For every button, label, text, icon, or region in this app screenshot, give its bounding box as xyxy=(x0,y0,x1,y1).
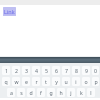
staticText: h xyxy=(59,89,63,96)
button[interactable]: w xyxy=(12,77,20,86)
button[interactable]: o xyxy=(82,77,90,86)
button[interactable]: 0 xyxy=(92,66,99,75)
staticText: Link xyxy=(4,8,15,15)
button[interactable]: Link xyxy=(4,8,15,15)
staticText: r xyxy=(35,78,38,85)
button[interactable]: i xyxy=(72,77,80,86)
button[interactable]: 6 xyxy=(52,66,60,75)
button[interactable]: s xyxy=(17,88,25,97)
button[interactable]: 1 xyxy=(2,66,10,75)
button[interactable]: j xyxy=(67,88,75,97)
button[interactable]: 4 xyxy=(32,66,40,75)
staticText: s xyxy=(20,89,23,96)
staticText: g xyxy=(49,89,53,96)
button[interactable]: r xyxy=(32,77,40,86)
staticText: d xyxy=(29,89,33,96)
button[interactable]: y xyxy=(52,77,60,86)
staticText: j xyxy=(70,89,72,96)
button[interactable]: f xyxy=(37,88,45,97)
button[interactable]: d xyxy=(27,88,35,97)
staticText: a xyxy=(10,89,13,96)
staticText: 8 xyxy=(75,67,78,74)
staticText: 5 xyxy=(45,67,48,74)
staticText: 9 xyxy=(85,67,88,74)
staticText: o xyxy=(84,78,88,85)
button[interactable]: l xyxy=(87,88,95,97)
button[interactable]: 7 xyxy=(62,66,70,75)
button[interactable]: 8 xyxy=(72,66,80,75)
button[interactable]: q xyxy=(2,77,10,86)
staticText: u xyxy=(64,78,68,85)
staticText: 2 xyxy=(15,67,18,74)
staticText: l xyxy=(90,89,92,96)
staticText: p xyxy=(94,78,98,85)
button[interactable]: g xyxy=(47,88,55,97)
button[interactable]: t xyxy=(42,77,50,86)
staticText: y xyxy=(55,78,58,85)
staticText: 6 xyxy=(55,67,58,74)
staticText: 0 xyxy=(94,67,97,74)
button[interactable]: k xyxy=(77,88,85,97)
button[interactable]: Keyboard suggestions xyxy=(0,57,100,63)
staticText: 7 xyxy=(65,67,68,74)
staticText: t xyxy=(45,78,47,85)
staticText: e xyxy=(25,78,28,85)
staticText: i xyxy=(75,78,77,85)
staticText: w xyxy=(14,78,19,85)
button[interactable]: e xyxy=(22,77,30,86)
staticText: k xyxy=(80,89,83,96)
button[interactable]: 3 xyxy=(22,66,30,75)
staticText: q xyxy=(4,78,8,85)
button[interactable]: 5 xyxy=(42,66,50,75)
button[interactable]: p xyxy=(92,77,99,86)
button[interactable]: a xyxy=(7,88,15,97)
staticText: 4 xyxy=(35,67,38,74)
staticText: 1 xyxy=(5,67,8,74)
button[interactable]: 9 xyxy=(82,66,90,75)
button[interactable]: 2 xyxy=(12,66,20,75)
staticText: 3 xyxy=(25,67,28,74)
button[interactable]: h xyxy=(57,88,65,97)
staticText: f xyxy=(40,89,42,96)
button[interactable]: u xyxy=(62,77,70,86)
